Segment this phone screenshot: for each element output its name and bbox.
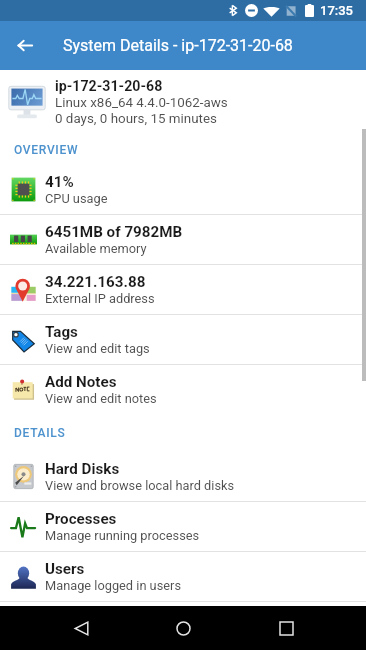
button[interactable]: Hard Disks [0, 452, 366, 501]
staticText: OVERVIEW [14, 143, 79, 157]
staticText: External IP address [45, 291, 155, 306]
staticText: Processes [45, 510, 117, 528]
button[interactable]: 6451MB of 7982MB [0, 215, 366, 264]
staticText: View and edit tags [45, 341, 150, 356]
staticText: System Details - ip-172-31-20-68 [63, 36, 293, 55]
staticText: View and browse local hard disks [45, 478, 235, 493]
button[interactable]: Processes [0, 502, 366, 551]
staticText: Manage running processes [45, 528, 200, 543]
button[interactable]: ip-172-31-20-68 [0, 70, 366, 135]
button[interactable]: 41% [0, 165, 366, 214]
button[interactable]: Back [0, 21, 50, 70]
button[interactable]: Add Notes [0, 365, 366, 414]
button[interactable]: Tags [0, 315, 366, 364]
button[interactable]: Home [161, 606, 205, 650]
staticText: 6451MB of 7982MB [45, 223, 183, 241]
staticText: 34.221.163.88 [45, 273, 146, 291]
button[interactable]: 34.221.163.88 [0, 265, 366, 314]
staticText: CPU usage [45, 191, 108, 206]
staticText: Add Notes [45, 373, 117, 391]
staticText: DETAILS [14, 426, 66, 440]
button[interactable]: Recent apps [264, 606, 308, 650]
button[interactable]: Users [0, 552, 366, 601]
staticText: Linux x86_64 4.4.0-1062-aws [55, 95, 228, 111]
staticText: Tags [45, 323, 78, 341]
staticText: Manage logged in users [45, 578, 182, 593]
staticText: Users [45, 560, 85, 578]
button[interactable]: Back [59, 606, 103, 650]
staticText: 0 days, 0 hours, 15 minutes [55, 111, 217, 127]
staticText: 17:35 [320, 3, 353, 18]
staticText: View and edit notes [45, 391, 157, 406]
staticText: Hard Disks [45, 460, 120, 478]
staticText: Available memory [45, 241, 147, 256]
staticText: ip-172-31-20-68 [55, 78, 163, 95]
staticText: 41% [45, 173, 74, 191]
